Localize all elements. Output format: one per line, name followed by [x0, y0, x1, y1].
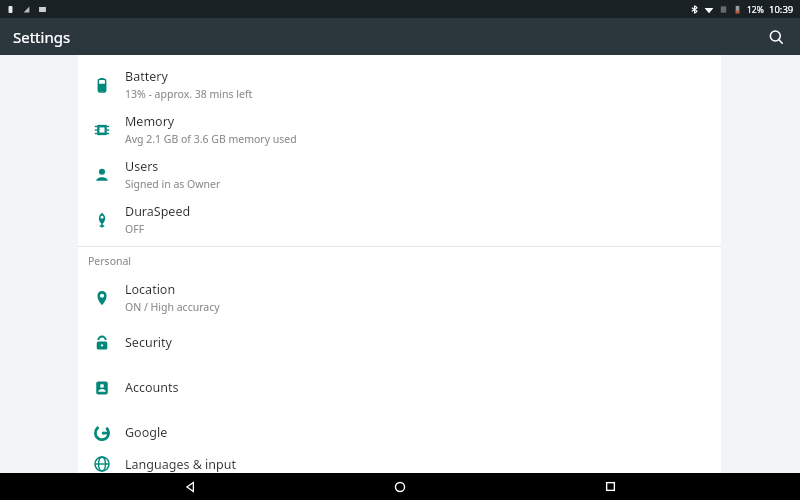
button[interactable]: Recent apps — [590, 473, 630, 500]
staticText: ON / High accuracy — [125, 300, 220, 314]
button[interactable]: Security — [78, 320, 721, 365]
button[interactable]: Google — [78, 410, 721, 455]
button[interactable]: Accounts — [78, 365, 721, 410]
button[interactable]: Memory — [78, 107, 721, 152]
staticText: Avg 2.1 GB of 3.6 GB memory used — [125, 132, 297, 146]
staticText: OFF — [125, 222, 145, 236]
staticText: Security — [125, 334, 172, 351]
staticText: Settings — [13, 27, 71, 47]
button[interactable]: Languages & input — [78, 455, 721, 473]
staticText: Accounts — [125, 379, 179, 396]
staticText: Battery — [125, 68, 168, 85]
staticText: 13% - approx. 38 mins left — [125, 87, 253, 101]
staticText: Location — [125, 281, 176, 298]
button[interactable]: Location — [78, 275, 721, 320]
staticText: Memory — [125, 113, 175, 130]
staticText: 10:39 — [769, 3, 794, 16]
staticText: Signed in as Owner — [125, 177, 221, 191]
staticText: Google — [125, 424, 168, 441]
button[interactable]: Home — [380, 473, 420, 500]
staticText: Personal — [88, 254, 132, 268]
button[interactable]: Search — [760, 21, 792, 53]
button[interactable]: Back — [170, 473, 210, 500]
staticText: 12% — [747, 4, 764, 16]
button[interactable]: Battery — [78, 62, 721, 107]
staticText: Users — [125, 158, 159, 175]
staticText: Languages & input — [125, 456, 236, 473]
button[interactable]: DuraSpeed — [78, 197, 721, 242]
button[interactable]: Users — [78, 152, 721, 197]
staticText: DuraSpeed — [125, 203, 191, 220]
